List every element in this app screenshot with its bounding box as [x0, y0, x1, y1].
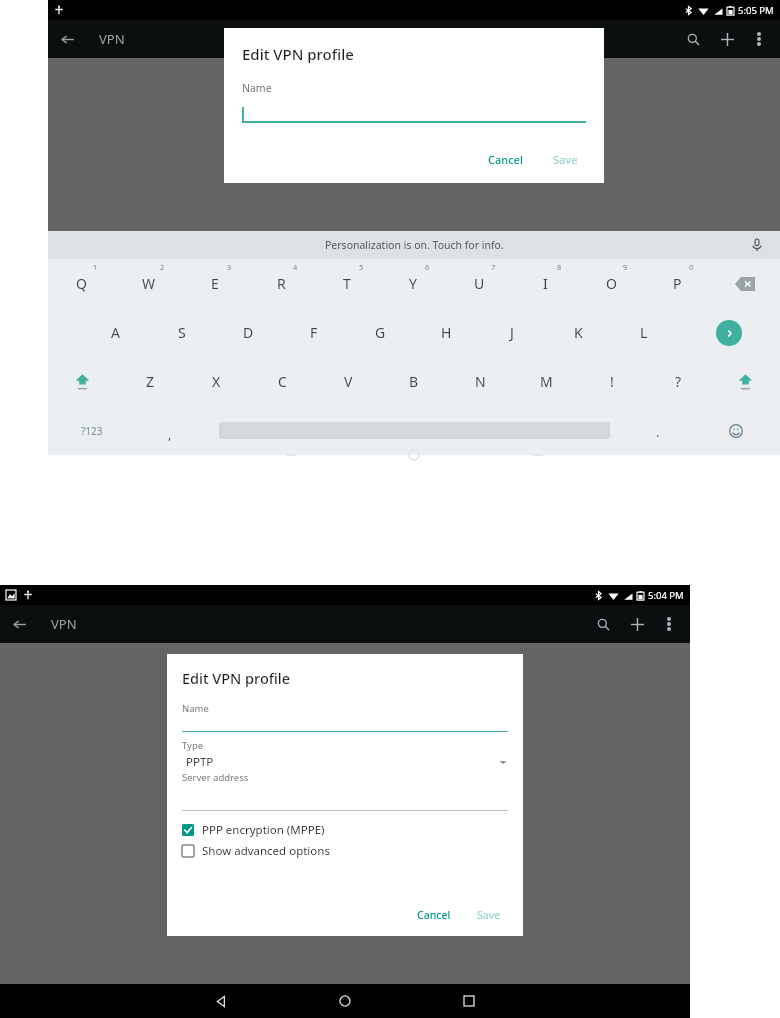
staticText: Cancel [488, 152, 523, 167]
button[interactable]: Save [470, 904, 508, 926]
button[interactable]: Back [159, 984, 283, 1018]
button[interactable]: Y [380, 259, 446, 308]
staticText: S [178, 323, 186, 342]
button[interactable]: . [624, 406, 692, 455]
button[interactable]: , [136, 406, 204, 455]
staticText: , [168, 426, 172, 442]
button[interactable]: D [215, 308, 281, 357]
button[interactable]: ?123 [48, 406, 136, 455]
staticText: D [243, 323, 254, 342]
staticText: 5:05 PM [738, 4, 774, 17]
button[interactable]: J [479, 308, 545, 357]
button[interactable]: I [512, 259, 578, 308]
staticText: Edit VPN profile [182, 668, 291, 688]
staticText: Show advanced options [202, 843, 330, 859]
button[interactable]: H [413, 308, 479, 357]
button[interactable]: Personalization is on. Touch for info. [48, 231, 780, 259]
button[interactable]: Cancel [480, 148, 531, 171]
staticText: PPTP [186, 754, 214, 770]
button[interactable]: A [82, 308, 149, 357]
staticText: P [673, 274, 682, 293]
staticText: X [212, 372, 221, 391]
staticText: 3 [227, 262, 232, 272]
staticText: J [510, 323, 514, 342]
button[interactable]: ? [645, 357, 711, 406]
staticText: VPN [99, 30, 125, 48]
button[interactable]: More options [744, 24, 774, 54]
button[interactable]: Voice input [746, 234, 768, 256]
button[interactable]: Save [545, 148, 586, 171]
button[interactable]: E [182, 259, 248, 308]
button[interactable]: Cancel [410, 904, 458, 926]
button[interactable]: Q [48, 259, 115, 308]
button[interactable]: Add VPN profile [620, 607, 654, 641]
button[interactable]: Delete [710, 259, 780, 308]
button[interactable]: M [513, 357, 579, 406]
staticText: L [640, 323, 648, 342]
button[interactable]: V [315, 357, 381, 406]
button[interactable]: S [149, 308, 215, 357]
staticText: V [344, 372, 353, 391]
button[interactable]: Space [204, 406, 624, 455]
staticText: R [277, 274, 286, 293]
button[interactable]: R [248, 259, 314, 308]
button[interactable]: O [578, 259, 644, 308]
staticText: M [540, 372, 553, 391]
button[interactable]: Back [48, 20, 86, 58]
staticText: E [211, 274, 219, 293]
button[interactable]: P [644, 259, 710, 308]
staticText: Y [409, 274, 417, 293]
staticText: Q [76, 274, 87, 293]
staticText: Name [182, 702, 209, 715]
staticText: . [656, 424, 660, 440]
button[interactable]: Shift [48, 357, 117, 406]
staticText: Edit VPN profile [242, 44, 354, 64]
button[interactable]: K [545, 308, 611, 357]
button[interactable]: Emoji [692, 406, 780, 455]
button[interactable]: U [446, 259, 512, 308]
button[interactable]: B [381, 357, 447, 406]
staticText: 9 [623, 262, 628, 272]
button[interactable]: F [281, 308, 347, 357]
staticText: A [111, 323, 120, 342]
button[interactable]: Search [676, 22, 710, 56]
staticText: 8 [557, 262, 562, 272]
staticText: I [543, 274, 548, 293]
button[interactable]: N [447, 357, 513, 406]
button[interactable]: T [314, 259, 380, 308]
button[interactable]: Show advanced options [182, 843, 508, 859]
button[interactable]: More options [654, 609, 684, 639]
staticText: 6 [425, 262, 430, 272]
button[interactable]: ! [579, 357, 645, 406]
button[interactable]: Back [0, 605, 38, 643]
staticText: 5:04 PM [648, 589, 684, 602]
staticText: Personalization is on. Touch for info. [325, 238, 504, 252]
staticText: 2 [160, 262, 165, 272]
staticText: 1 [93, 262, 98, 272]
staticText: 7 [491, 262, 496, 272]
button[interactable]: L [611, 308, 677, 357]
button[interactable]: Z [117, 357, 183, 406]
button[interactable]: Search [586, 607, 620, 641]
staticText: T [343, 274, 351, 293]
staticText: B [409, 372, 419, 391]
button[interactable]: C [249, 357, 315, 406]
button[interactable]: X [183, 357, 249, 406]
staticText: G [375, 323, 386, 342]
staticText: H [441, 323, 452, 342]
button[interactable]: Home [283, 984, 407, 1018]
staticText: VPN [51, 615, 77, 633]
staticText: C [278, 372, 287, 391]
button[interactable]: Add VPN profile [710, 22, 744, 56]
button[interactable]: W [115, 259, 182, 308]
other: Type dropdown [498, 757, 508, 767]
staticText: Save [553, 152, 578, 167]
staticText: 5 [359, 262, 364, 272]
button[interactable]: Shift [711, 357, 780, 406]
staticText: 0 [689, 262, 694, 272]
staticText: PPP encryption (MPPE) [202, 822, 325, 838]
button[interactable]: Enter [677, 308, 780, 357]
button[interactable]: PPP encryption (MPPE) [182, 822, 508, 838]
button[interactable]: G [347, 308, 413, 357]
button[interactable]: Recent apps [407, 984, 531, 1018]
